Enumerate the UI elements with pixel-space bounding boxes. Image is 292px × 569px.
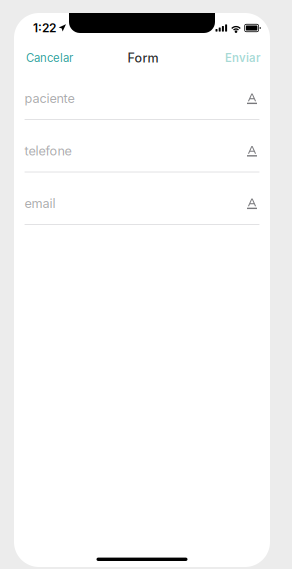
- button[interactable]: Cancelar: [26, 45, 81, 71]
- staticText: paciente: [24, 91, 74, 106]
- staticText: Cancelar: [26, 51, 73, 65]
- button[interactable]: Text formatting: [241, 198, 259, 220]
- staticText: Enviar: [225, 51, 260, 65]
- staticText: email: [24, 196, 55, 211]
- button[interactable]: Text formatting: [241, 146, 259, 168]
- staticText: Form: [127, 50, 158, 66]
- staticText: 1:22: [33, 21, 56, 35]
- button[interactable]: Enviar: [217, 45, 260, 71]
- button[interactable]: Text formatting: [241, 93, 259, 115]
- staticText: telefone: [24, 143, 71, 159]
